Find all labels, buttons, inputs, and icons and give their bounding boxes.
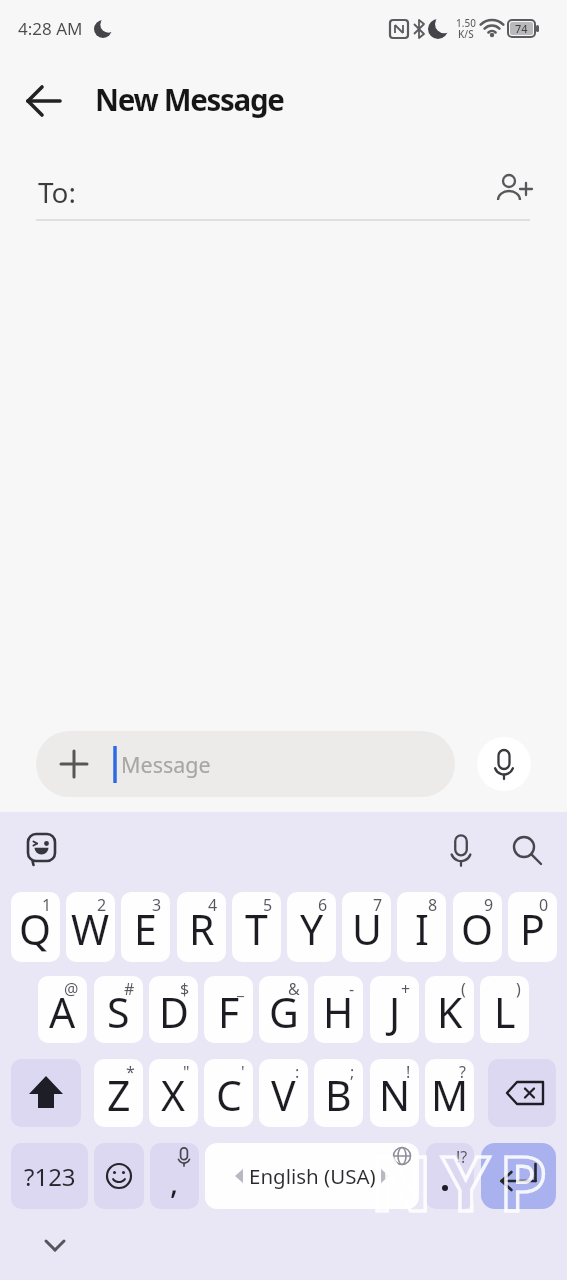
button[interactable]: Q [11,892,60,962]
staticText: NYP [370,1130,557,1226]
button[interactable]: R [177,892,226,962]
button[interactable]: S [94,976,143,1043]
staticText: ) [516,978,521,1000]
button[interactable] [488,1059,556,1127]
staticText: 3 [152,894,162,916]
staticText: , [170,1162,179,1203]
staticText: : [295,1061,300,1083]
staticText: New Message [95,79,284,119]
button[interactable] [481,1143,556,1209]
button[interactable] [26,832,60,868]
button[interactable]: W [66,892,115,962]
staticText: Z [107,1067,131,1123]
button[interactable]: O [453,892,502,962]
staticText: A [49,984,76,1040]
button[interactable]: D [149,976,198,1043]
button[interactable] [11,1059,81,1127]
staticText: E [134,901,157,957]
staticText: 9 [484,894,494,916]
staticText: G [269,984,299,1040]
staticText: 1 [42,894,52,916]
button[interactable]: V [259,1059,308,1127]
staticText: L [494,984,516,1040]
staticText: 7 [373,894,383,916]
staticText: Message [121,750,211,779]
button[interactable]: I [397,892,446,962]
staticText: H [323,984,354,1040]
button[interactable] [35,1228,75,1262]
staticText: 74 [515,21,528,36]
button[interactable]: N [370,1059,419,1127]
staticText: To: [38,173,77,211]
staticText: 2 [97,894,107,916]
button[interactable]: Message [36,731,455,797]
staticText: $ [180,978,190,1000]
staticText: * [126,1061,135,1083]
button[interactable] [492,168,536,212]
button[interactable]: M [425,1059,474,1127]
staticText: O [461,901,494,957]
staticText: S [107,984,130,1040]
staticText: 6 [318,894,328,916]
button[interactable]: J [370,976,419,1043]
staticText: 1.50 [456,16,476,30]
button[interactable]: U [342,892,391,962]
button[interactable] [94,1143,144,1209]
staticText: + [401,978,411,1000]
staticText: ?123 [24,1160,76,1193]
button[interactable]: Z [94,1059,143,1127]
staticText: T [245,901,268,957]
button[interactable]: H [314,976,363,1043]
staticText: !? [456,1146,468,1168]
staticText: 4 [208,894,218,916]
button[interactable]: L [480,976,529,1043]
button[interactable]: P [508,892,557,962]
staticText: - [349,978,355,1000]
button[interactable]: B [314,1059,363,1127]
staticText: M [431,1067,469,1123]
button[interactable] [443,832,479,868]
staticText: ' [241,1061,245,1083]
staticText: K [437,984,463,1040]
button[interactable]: A [38,976,87,1043]
button[interactable]: X [149,1059,198,1127]
button[interactable]: English (USA) [205,1143,419,1209]
staticText: V [271,1067,296,1123]
button[interactable]: Y [287,892,336,962]
button[interactable]: E [121,892,170,962]
staticText: J [389,984,401,1040]
button[interactable] [477,737,531,791]
button[interactable]: G [259,976,308,1043]
button[interactable]: !? [426,1143,474,1209]
button[interactable] [508,832,544,868]
staticText: P [520,901,545,957]
staticText: F [218,984,240,1040]
staticText: 5 [263,894,273,916]
button[interactable]: K [425,976,474,1043]
staticText: X [161,1067,186,1123]
staticText: " [183,1061,190,1083]
staticText: _ [237,978,245,1000]
button[interactable] [20,77,68,125]
staticText: 8 [428,894,438,916]
staticText: 0 [539,894,549,916]
staticText: R [189,901,215,957]
staticText: Q [19,901,52,957]
staticText: U [352,901,382,957]
staticText: Y [300,901,324,957]
button[interactable]: T [232,892,281,962]
button[interactable]: F [204,976,253,1043]
button[interactable]: C [204,1059,253,1127]
button[interactable]: , [150,1143,199,1209]
staticText: # [124,978,135,1000]
staticText: ( [461,978,466,1000]
staticText: D [159,984,189,1040]
button[interactable]: ?123 [11,1143,88,1209]
staticText: ! [406,1061,411,1083]
staticText: W [71,901,110,957]
staticText: ? [459,1061,466,1083]
staticText: & [288,978,300,1000]
staticText: C [216,1067,242,1123]
staticText: @ [64,978,79,1000]
staticText: English (USA) [249,1162,376,1190]
